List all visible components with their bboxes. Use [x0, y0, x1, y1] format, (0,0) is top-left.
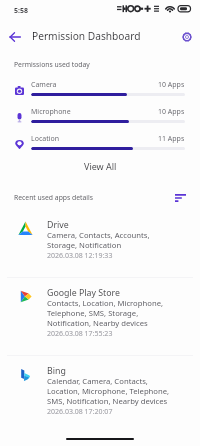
staticText: Recent used apps details — [14, 193, 94, 202]
button[interactable]: Google Play Store — [0, 278, 200, 355]
staticText: Camera — [31, 80, 57, 90]
staticText: Contacts, Location, Microphone, — [47, 298, 164, 308]
staticText: Microphone — [31, 107, 71, 117]
button[interactable]: Microphone — [0, 101, 200, 128]
button[interactable]: Drive — [0, 202, 200, 277]
button[interactable]: Settings — [177, 27, 196, 46]
staticText: Drive — [47, 219, 69, 231]
staticText: 10 Apps — [158, 107, 185, 117]
staticText: 11 Apps — [158, 134, 185, 144]
staticText: 2026.03.08 12:19:33 — [47, 251, 113, 261]
staticText: View All — [84, 160, 117, 172]
staticText: 2026.03.08 17:55:23 — [47, 329, 113, 339]
button[interactable]: View All — [74, 158, 127, 174]
button[interactable]: Camera — [0, 74, 200, 101]
staticText: Location — [31, 134, 60, 144]
staticText: Notification, Nearby devices — [47, 318, 148, 328]
button[interactable]: Sort — [171, 189, 189, 207]
staticText: Location, Microphone, Telephone, — [47, 386, 170, 396]
staticText: SMS, Notification, Nearby devices — [47, 396, 168, 406]
staticText: Calendar, Camera, Contacts, — [47, 376, 148, 386]
staticText: 10 Apps — [158, 80, 185, 90]
button[interactable]: Location — [0, 128, 200, 155]
staticText: Bing — [47, 365, 66, 377]
staticText: 2026.03.08 17:20:07 — [47, 407, 113, 417]
staticText: Telephone, SMS, Storage, — [47, 308, 139, 318]
button[interactable]: Back — [5, 27, 24, 46]
button[interactable]: Bing — [0, 356, 200, 425]
staticText: Camera, Contacts, Accounts, — [47, 230, 150, 240]
staticText: Google Play Store — [47, 287, 121, 299]
staticText: Permission Dashboard — [32, 29, 141, 43]
staticText: 5:58 — [14, 6, 28, 16]
staticText: Storage, Notification — [47, 240, 122, 250]
staticText: Permissions used today — [14, 60, 90, 69]
